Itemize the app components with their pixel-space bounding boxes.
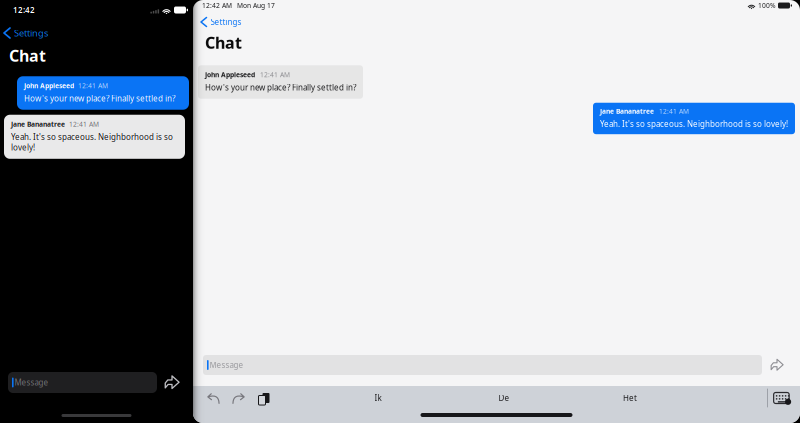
staticText: Jane Bananatree: [11, 120, 65, 129]
staticText: Settings: [14, 27, 48, 39]
button[interactable]: Undo: [202, 386, 226, 410]
button[interactable]: Settings: [193, 15, 249, 29]
staticText: Het: [623, 393, 637, 403]
staticText: 100%: [758, 1, 776, 10]
staticText: 12:41 AM: [78, 81, 108, 90]
button[interactable]: Ik: [315, 386, 441, 410]
button[interactable]: Send: [762, 355, 792, 375]
staticText: 12:41 AM: [260, 70, 290, 79]
button[interactable]: De: [441, 386, 567, 410]
staticText: 12:42 AM: [202, 1, 232, 10]
button[interactable]: Send: [157, 372, 187, 393]
staticText: Chat: [205, 32, 242, 53]
staticText: Jane Bananatree: [600, 107, 654, 116]
staticText: Mon Aug 17: [237, 1, 275, 10]
staticText: 12:41 AM: [659, 107, 689, 116]
button[interactable]: Settings: [0, 25, 56, 41]
staticText: Settings: [210, 17, 241, 27]
staticText: Yeah. It's so spaceous. Neighborhood is …: [11, 132, 173, 153]
staticText: Ik: [374, 393, 381, 403]
staticText: John Appleseed: [205, 70, 255, 79]
staticText: John Appleseed: [24, 81, 74, 90]
staticText: How's your new place? Finally settled in…: [24, 93, 175, 104]
staticText: De: [498, 393, 509, 403]
staticText: Message: [15, 377, 49, 388]
staticText: Chat: [9, 45, 46, 66]
staticText: How's your new place? Finally settled in…: [205, 82, 356, 93]
button[interactable]: Het: [567, 386, 693, 410]
button[interactable]: Paste: [250, 386, 274, 410]
staticText: Yeah. It's so spaceous. Neighborhood is …: [600, 119, 788, 129]
staticText: 12:41 AM: [69, 120, 99, 129]
staticText: 12:42: [13, 5, 35, 15]
button[interactable]: Dismiss Keyboard: [768, 386, 795, 410]
staticText: Message: [210, 360, 244, 370]
button[interactable]: Redo: [226, 386, 250, 410]
